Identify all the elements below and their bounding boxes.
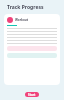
- staticText: Track Progress: [7, 4, 44, 11]
- staticText: Workout: [15, 18, 29, 22]
- button[interactable]: Start: [25, 92, 39, 97]
- staticText: Start: [28, 93, 36, 97]
